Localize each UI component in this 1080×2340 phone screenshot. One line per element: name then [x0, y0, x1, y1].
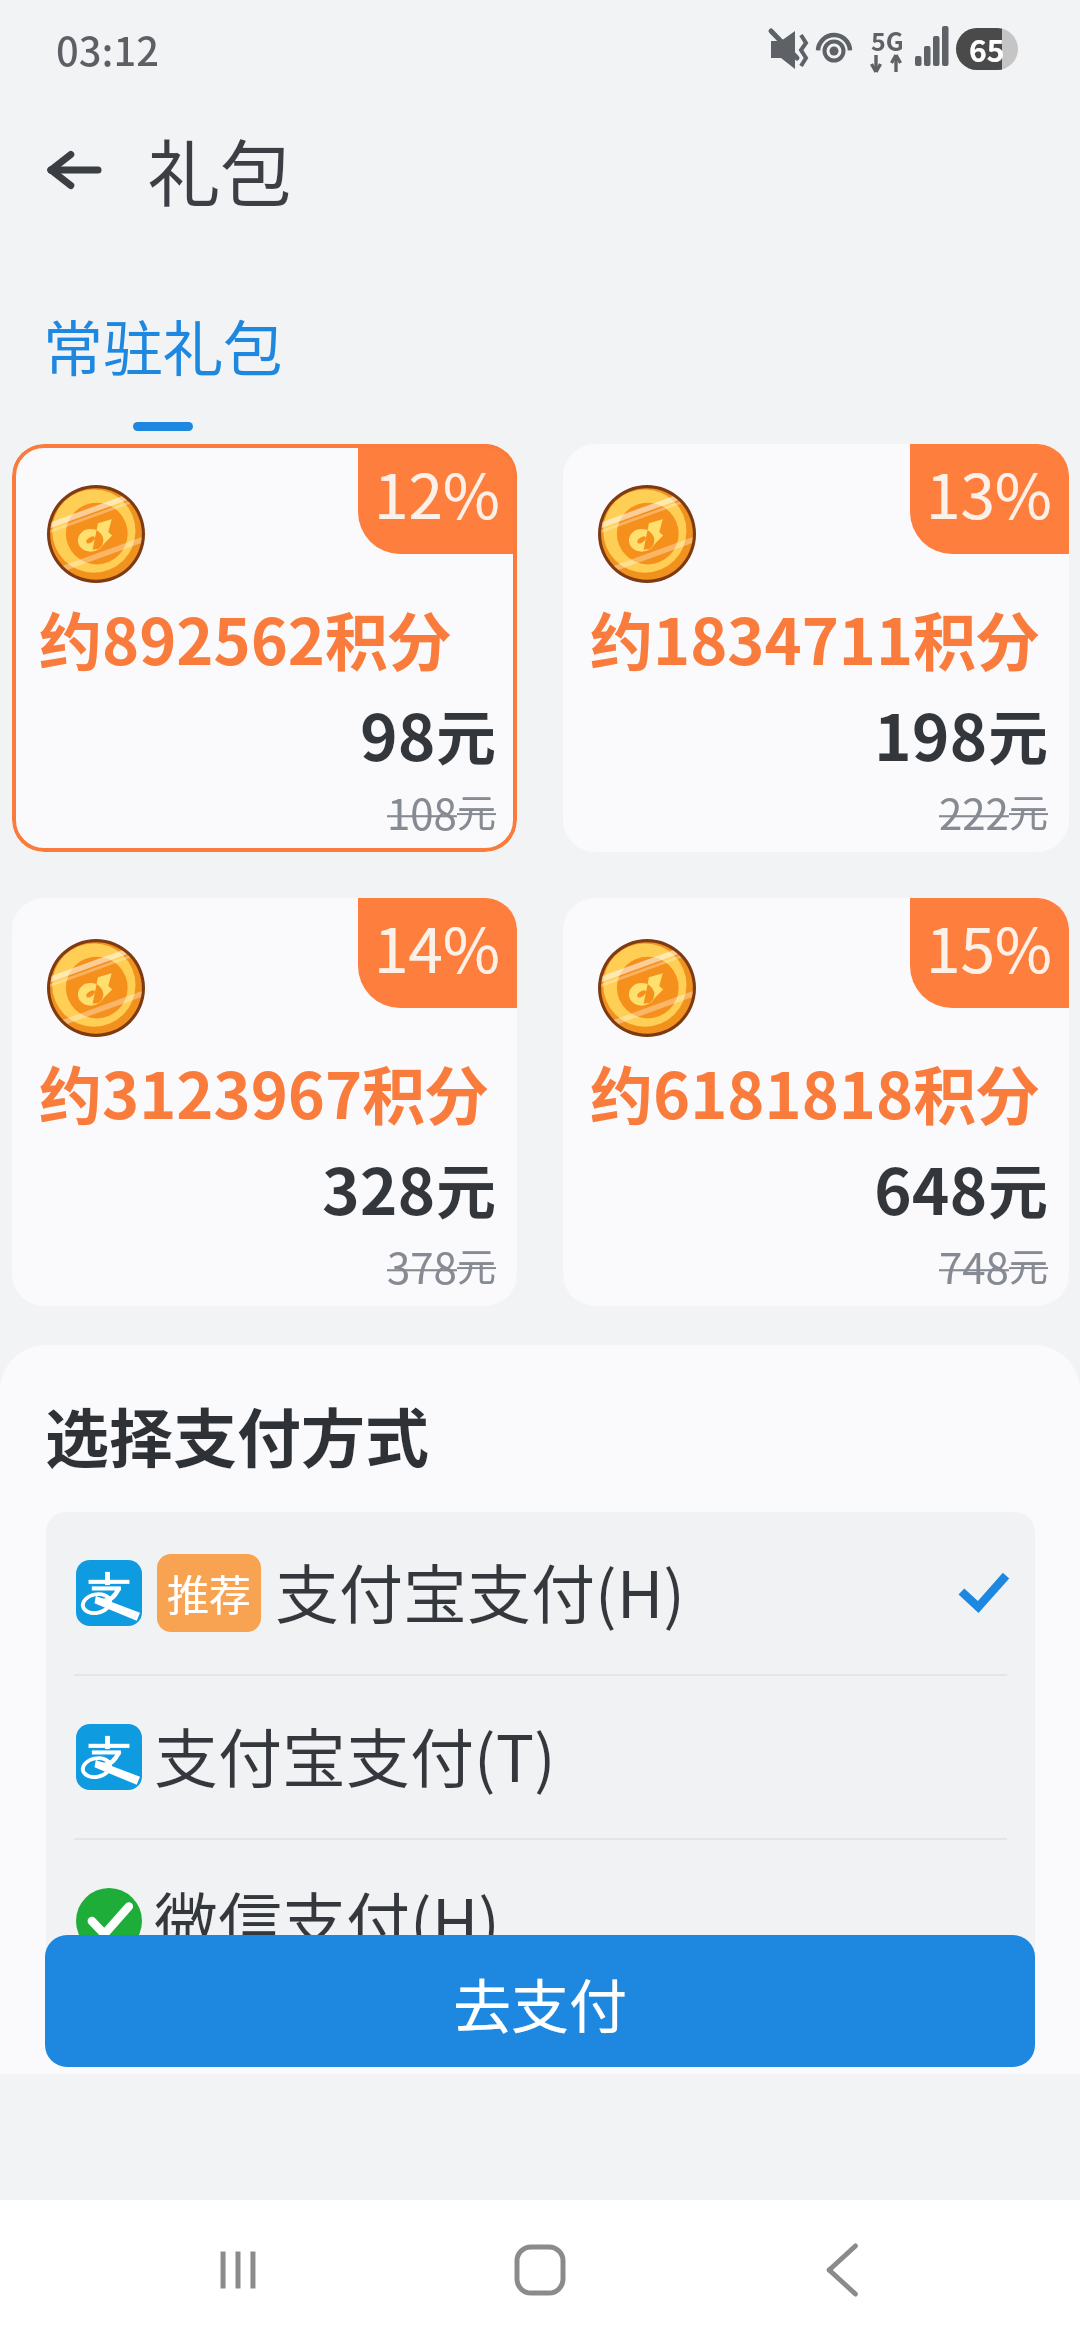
staticText: 礼包 — [148, 116, 293, 220]
staticText: 微信支付(H) — [154, 1872, 500, 1965]
staticText: 约892562积分 — [39, 592, 452, 683]
button[interactable]: Back — [22, 118, 126, 222]
staticText: 常驻礼包 — [43, 301, 283, 388]
button[interactable]: Home — [492, 2222, 588, 2318]
staticText: 元 — [988, 1144, 1048, 1231]
staticText: 支付宝支付(T) — [154, 1708, 556, 1801]
staticText: 约6181818积分 — [590, 1046, 1040, 1137]
staticText: 5G — [871, 22, 904, 58]
button[interactable]: 常驻礼包 — [36, 294, 288, 439]
staticText: 12% — [374, 447, 500, 537]
staticText: 198 — [874, 687, 988, 780]
staticText: 222 — [939, 781, 1009, 842]
button[interactable]: 14% — [12, 898, 517, 1306]
staticText: 14% — [374, 901, 500, 991]
staticText: 748 — [939, 1235, 1009, 1296]
button[interactable]: 去支付 — [45, 1935, 1035, 2067]
button[interactable]: 13% — [563, 444, 1069, 852]
staticText: 03:12 — [56, 20, 160, 78]
staticText: 支付宝支付(H) — [275, 1544, 685, 1637]
staticText: 推荐 — [167, 1562, 252, 1623]
button[interactable]: Back — [794, 2222, 890, 2318]
button[interactable]: 15% — [563, 898, 1069, 1306]
staticText: 约1834711积分 — [590, 592, 1040, 683]
staticText: 98 — [360, 687, 436, 780]
staticText: 328 — [322, 1141, 436, 1234]
staticText: 元 — [436, 690, 496, 777]
staticText: 648 — [874, 1141, 988, 1234]
staticText: 元 — [436, 1144, 496, 1231]
button[interactable]: 12% — [12, 444, 517, 852]
staticText: 元 — [1009, 782, 1049, 838]
staticText: 选择支付方式 — [45, 1388, 429, 1481]
staticText: 去支付 — [453, 1961, 628, 2045]
button[interactable]: Recent apps — [190, 2222, 286, 2318]
staticText: 元 — [457, 782, 497, 838]
button[interactable]: 推荐 — [76, 1512, 1008, 1674]
staticText: 约3123967积分 — [39, 1046, 489, 1137]
staticText: 元 — [988, 690, 1048, 777]
staticText: 108 — [387, 781, 457, 842]
staticText: 15% — [926, 901, 1052, 991]
button[interactable]: 微信支付(H) — [76, 1840, 1008, 2002]
staticText: 13% — [926, 447, 1052, 537]
staticText: 378 — [387, 1235, 457, 1296]
staticText: 元 — [1009, 1236, 1049, 1292]
staticText: 元 — [457, 1236, 497, 1292]
button[interactable]: 支付宝支付(T) — [76, 1676, 1008, 1838]
staticText: 65 — [969, 28, 1005, 69]
